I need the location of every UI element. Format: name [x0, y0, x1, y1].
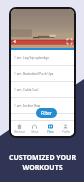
button[interactable]: 1 am Leg/hip upbridge — [11, 50, 74, 65]
staticText: 1 am Leg/hip upbridge — [14, 56, 50, 60]
staticText: 1 am Cable Curl — [14, 88, 39, 92]
button[interactable]: 1 am Basketball Push Ups — [11, 66, 74, 81]
staticText: WORKOUTS — [22, 163, 63, 173]
button[interactable]: Workout — [12, 124, 27, 134]
button[interactable]: Filter — [36, 108, 57, 118]
button[interactable]: Fullscreen — [67, 39, 72, 44]
staticText: Plans — [47, 130, 54, 134]
button[interactable]: Profile — [58, 124, 73, 134]
staticText: Workout — [14, 130, 25, 134]
staticText: Profile — [62, 130, 70, 134]
staticText: 1 am Basketball Push Ups — [14, 72, 54, 76]
button[interactable]: 1 am Cable Curl — [11, 82, 74, 97]
staticText: CUSTOMIZED YOUR — [9, 153, 76, 163]
button[interactable]: Plans — [43, 124, 58, 134]
button[interactable]: Back — [12, 39, 17, 44]
button[interactable]: 1 am Incline Row — [11, 98, 74, 113]
staticText: Music — [31, 130, 39, 134]
staticText: 1 am Incline Row — [14, 104, 41, 108]
staticText: Filter — [41, 110, 52, 116]
button[interactable]: Music — [27, 124, 42, 134]
